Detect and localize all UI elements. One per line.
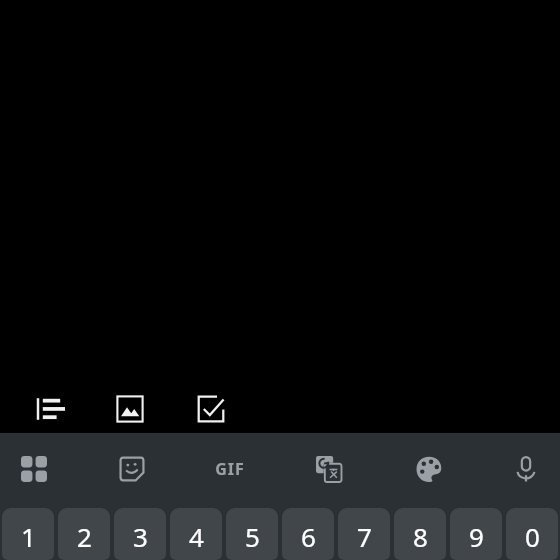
button[interactable]: Stickers <box>109 446 155 492</box>
staticText: 6 <box>301 519 316 554</box>
button[interactable]: 6 <box>282 508 334 560</box>
staticText: 3 <box>133 519 148 554</box>
button[interactable]: Themes <box>406 446 452 492</box>
staticText: 1 <box>21 519 36 554</box>
button[interactable]: 3 <box>114 508 166 560</box>
button[interactable]: 2 <box>58 508 110 560</box>
button[interactable]: Formatting options <box>23 382 77 436</box>
button[interactable]: 5 <box>226 508 278 560</box>
button[interactable]: Insert checklist <box>184 382 238 436</box>
button[interactable]: 4 <box>170 508 222 560</box>
staticText: 0 <box>525 519 540 554</box>
button[interactable]: Insert image <box>103 382 157 436</box>
button[interactable]: GIF <box>207 446 253 492</box>
button[interactable]: Translate <box>306 446 352 492</box>
button[interactable]: 1 <box>2 508 54 560</box>
button[interactable]: 8 <box>394 508 446 560</box>
button[interactable]: Voice input <box>503 446 549 492</box>
staticText: 8 <box>413 519 428 554</box>
button[interactable]: 9 <box>450 508 502 560</box>
staticText: 5 <box>245 519 260 554</box>
button[interactable]: 0 <box>506 508 558 560</box>
staticText: 4 <box>189 519 204 554</box>
staticText: 9 <box>469 519 484 554</box>
staticText: 2 <box>77 519 92 554</box>
button[interactable]: 7 <box>338 508 390 560</box>
staticText: 7 <box>357 519 372 554</box>
staticText: GIF <box>215 458 245 480</box>
button[interactable]: Open features menu <box>11 446 57 492</box>
